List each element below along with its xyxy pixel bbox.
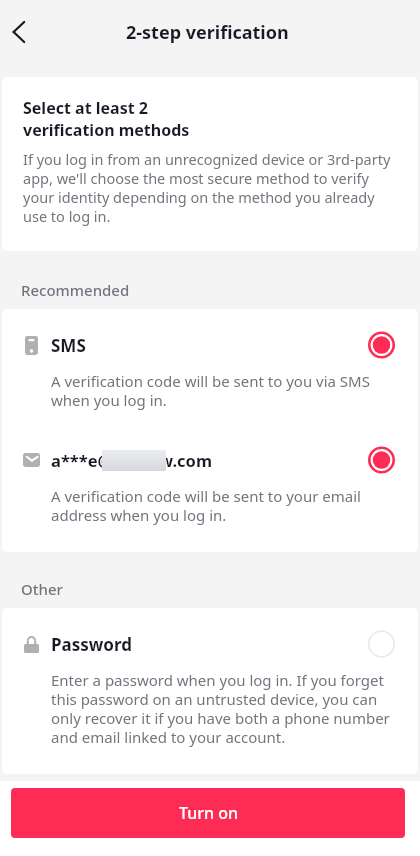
staticText: w.com: [159, 449, 213, 471]
staticText: Other: [21, 579, 63, 599]
button[interactable]: a***e@: [2, 424, 418, 539]
staticText: A verification code will be sent to you …: [51, 371, 395, 411]
staticText: a***e@: [51, 449, 113, 471]
staticText: Turn on: [179, 802, 238, 824]
staticText: 2-step verification: [126, 20, 289, 45]
button[interactable]: Password: [2, 608, 418, 761]
button[interactable]: Selected: [368, 447, 395, 473]
button[interactable]: Selected: [368, 332, 395, 358]
button[interactable]: SMS: [2, 309, 418, 424]
staticText: A verification code will be sent to your…: [51, 486, 395, 526]
staticText: Select at least 2 verification methods: [23, 97, 190, 140]
staticText: Password: [51, 633, 132, 656]
staticText: Enter a password when you log in. If you…: [51, 670, 395, 748]
staticText: SMS: [51, 334, 86, 357]
button[interactable]: Turn on: [11, 788, 405, 838]
button[interactable]: Not selected: [368, 631, 395, 657]
staticText: Recommended: [21, 280, 130, 300]
button[interactable]: Back: [2, 10, 46, 54]
staticText: If you log in from an unrecognized devic…: [23, 149, 402, 226]
